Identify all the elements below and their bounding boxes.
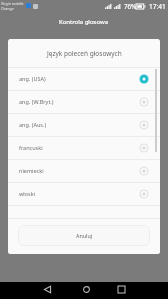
button[interactable]: Back [33, 282, 61, 296]
staticText: francuski [19, 144, 43, 151]
button[interactable]: Recent apps [107, 282, 135, 296]
button[interactable]: ang. (W.Bryt.) [8, 91, 160, 113]
button[interactable]: niemiecki [8, 160, 160, 182]
staticText: 17:41 [149, 2, 166, 11]
button[interactable]: Home [72, 282, 100, 296]
staticText: ang. (USA) [19, 75, 46, 82]
staticText: Virgin mobile [1, 1, 24, 6]
staticText: Język poleceń głosowych [47, 49, 122, 58]
staticText: włoski [19, 190, 36, 197]
button[interactable]: francuski [8, 137, 160, 159]
staticText: ang. (W.Bryt.) [19, 98, 54, 105]
staticText: 76% [124, 2, 137, 10]
staticText: Anuluj [76, 232, 93, 239]
button[interactable]: Anuluj [18, 225, 150, 246]
button[interactable]: ang. (USA) [8, 68, 160, 90]
staticText: ang. (Aus.) [19, 121, 47, 128]
button[interactable]: włoski [8, 183, 160, 205]
button[interactable]: ang. (Aus.) [8, 114, 160, 136]
staticText: Kontrola głosowa [59, 18, 109, 26]
staticText: Orange [1, 6, 14, 11]
staticText: niemiecki [19, 167, 44, 174]
